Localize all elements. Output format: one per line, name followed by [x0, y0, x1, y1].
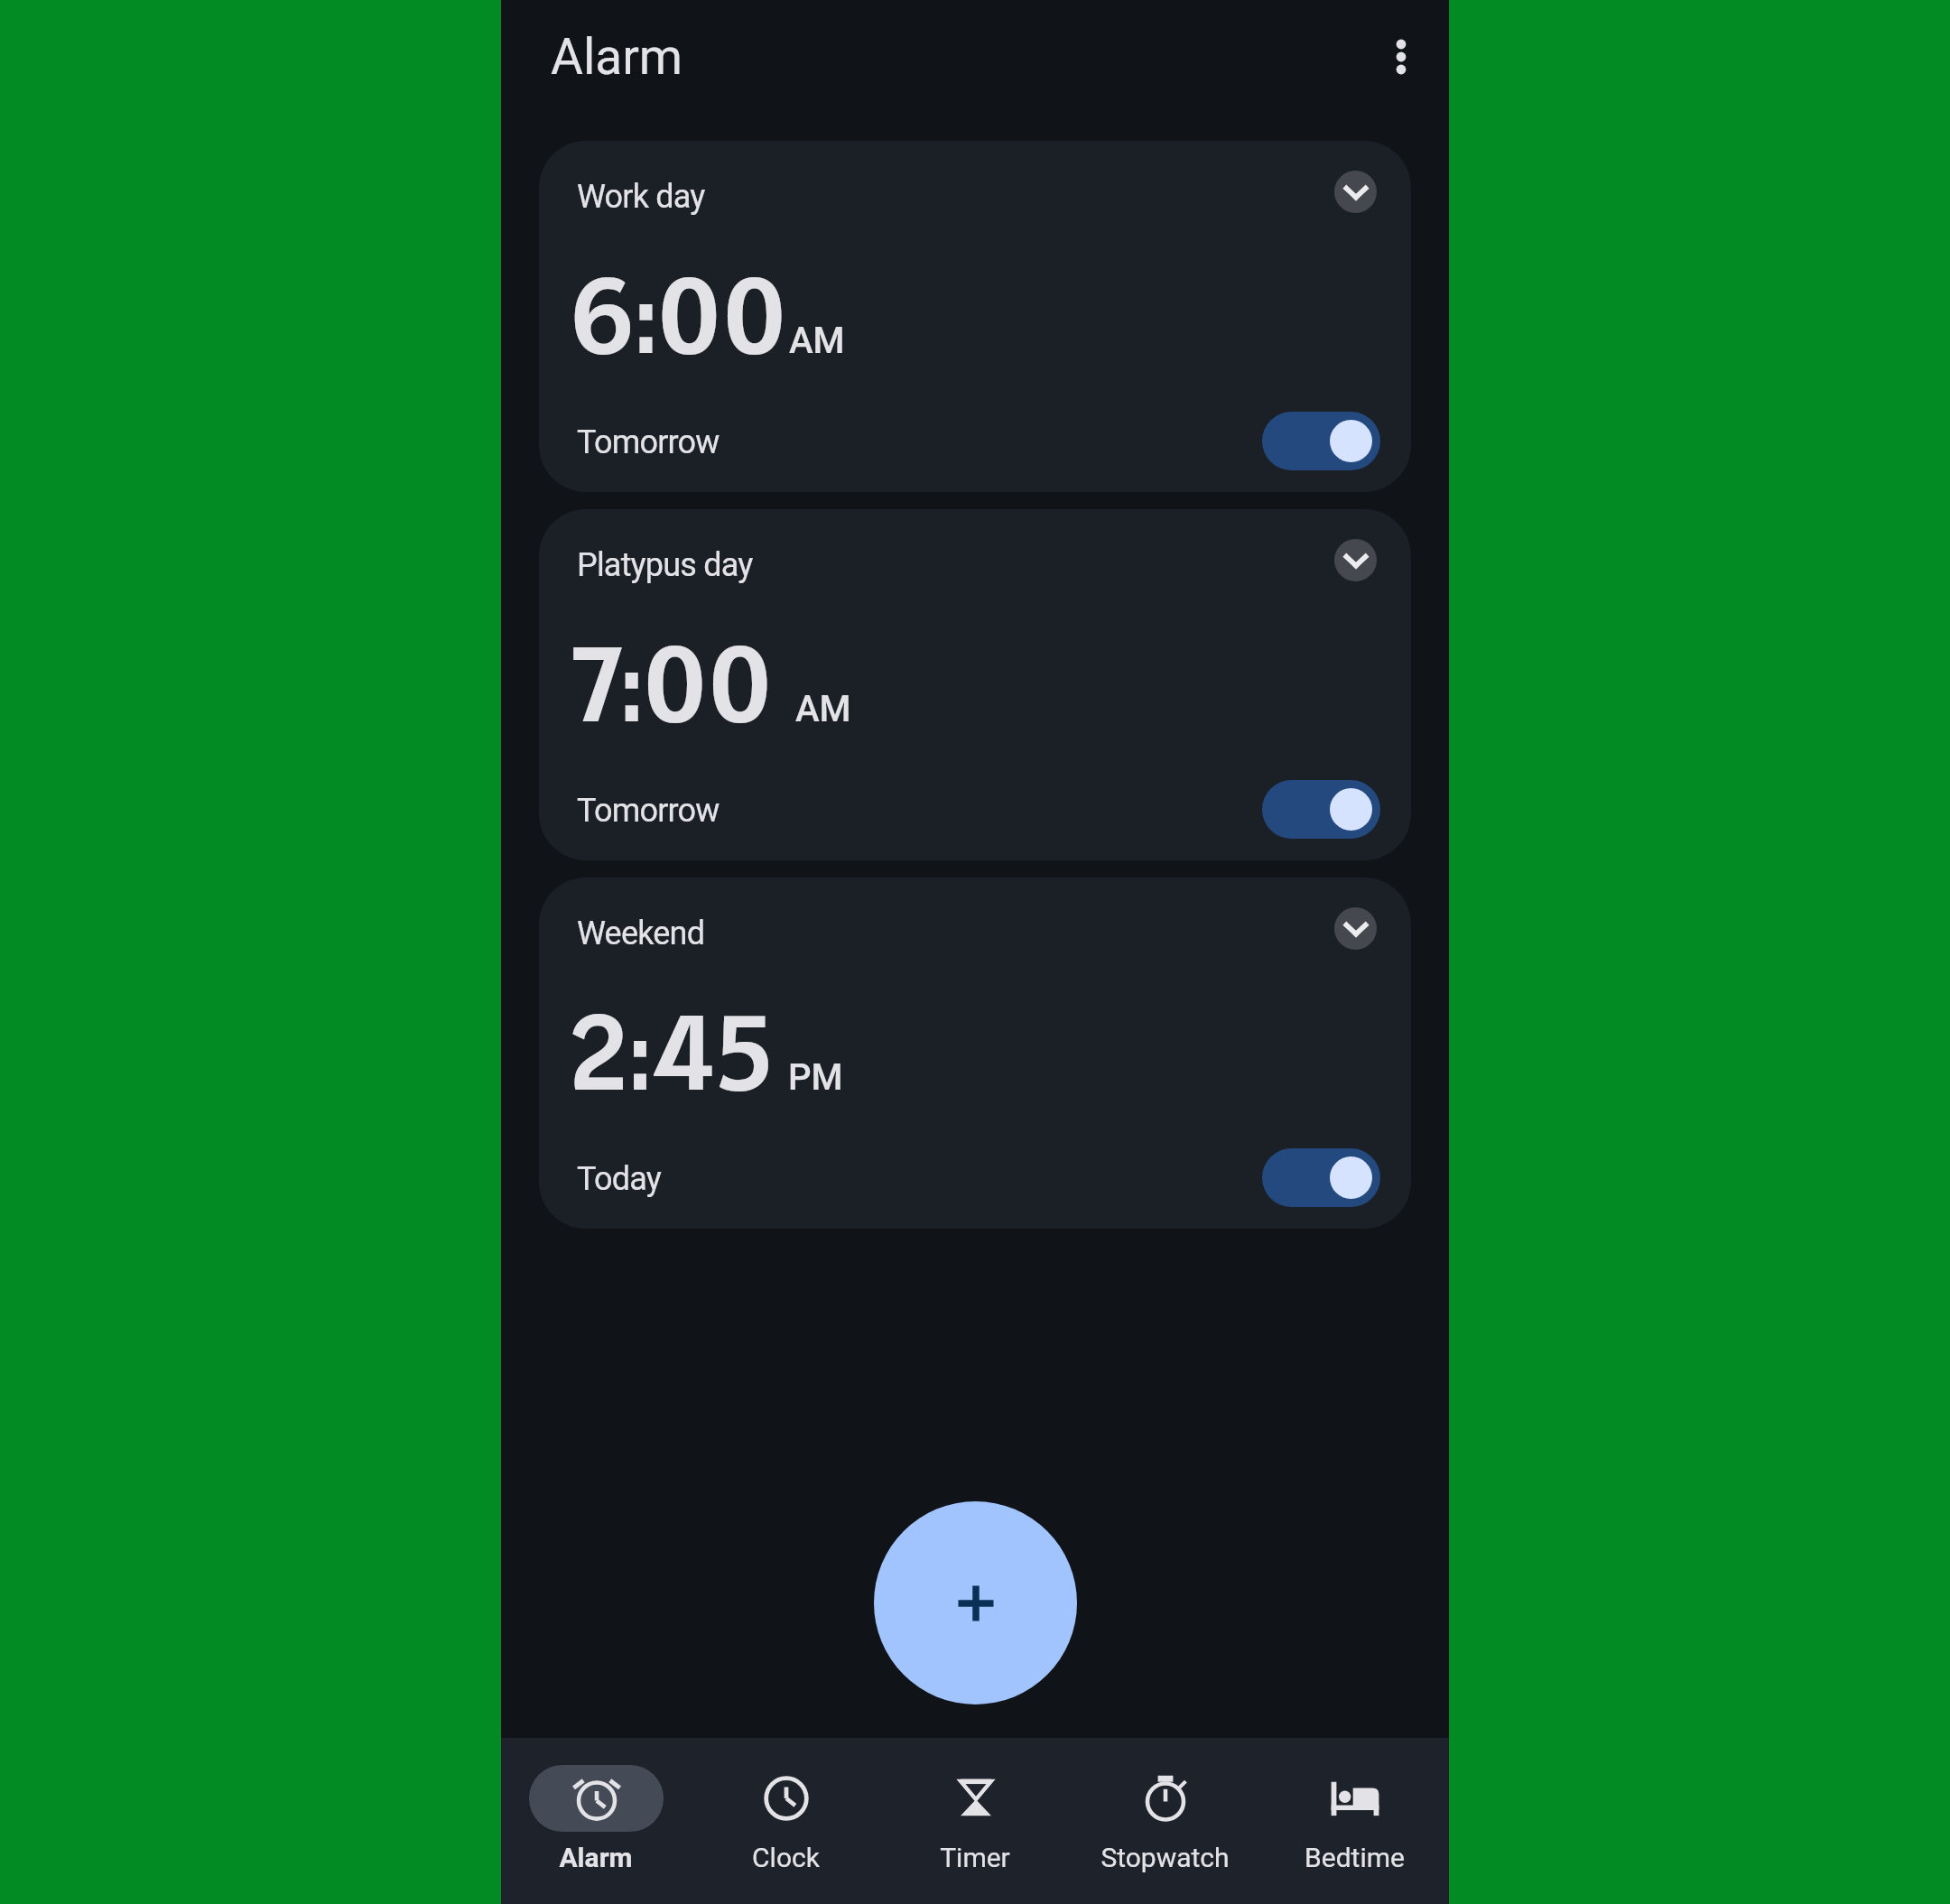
staticText: AM [795, 688, 851, 730]
button[interactable]: Alarm [501, 1738, 691, 1873]
button[interactable]: Clock [691, 1738, 880, 1873]
button[interactable]: Weekend [539, 878, 1411, 1229]
staticText: Timer [940, 1842, 1010, 1873]
button[interactable]: Add alarm [874, 1501, 1077, 1704]
staticText: 2:45 [569, 984, 775, 1119]
staticText: Weekend [577, 915, 705, 952]
button[interactable]: Toggle alarm [1262, 1148, 1380, 1207]
staticText: Platypus day [577, 546, 753, 584]
staticText: Today [577, 1160, 661, 1198]
button[interactable]: Toggle alarm [1262, 412, 1380, 470]
button[interactable]: Expand alarm [1334, 539, 1377, 581]
staticText: Alarm [559, 1842, 633, 1873]
staticText: Work day [577, 178, 705, 216]
button[interactable]: Timer [880, 1738, 1070, 1873]
button[interactable]: Expand alarm [1334, 907, 1377, 950]
button[interactable]: Work day [539, 141, 1411, 492]
staticText: Tomorrow [577, 423, 720, 461]
staticText: Alarm [551, 28, 683, 86]
button[interactable]: Stopwatch [1070, 1738, 1259, 1873]
staticText: 7:00 [569, 616, 772, 751]
button[interactable]: Bedtime [1259, 1738, 1449, 1873]
staticText: Bedtime [1305, 1842, 1405, 1873]
staticText: Stopwatch [1100, 1842, 1230, 1873]
button[interactable]: Expand alarm [1334, 171, 1377, 213]
button[interactable]: Toggle alarm [1262, 780, 1380, 839]
staticText: Tomorrow [577, 792, 720, 830]
staticText: AM [789, 320, 845, 362]
staticText: Clock [752, 1842, 820, 1873]
button[interactable]: More options [1358, 14, 1444, 100]
staticText: PM [788, 1056, 843, 1099]
button[interactable]: Platypus day [539, 509, 1411, 860]
staticText: 6:00 [569, 247, 786, 383]
